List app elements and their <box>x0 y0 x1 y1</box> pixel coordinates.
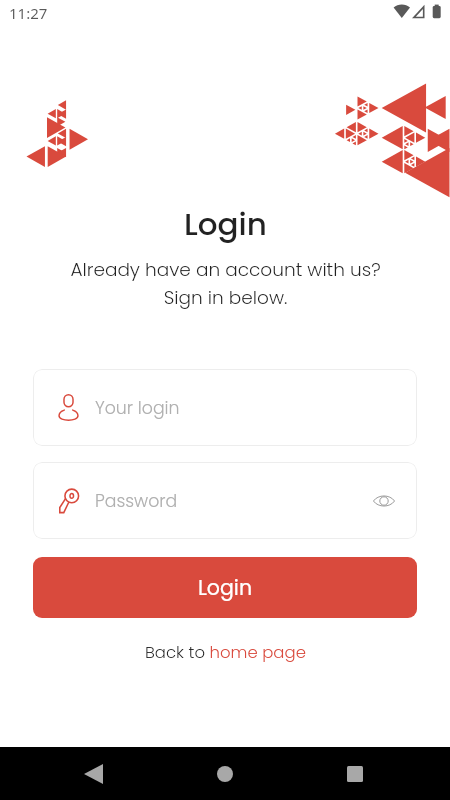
staticText: 11:27 <box>9 3 48 23</box>
button[interactable]: Back to home page <box>145 641 306 664</box>
button[interactable]: Password <box>33 462 417 539</box>
button[interactable]: Recent apps <box>334 753 376 795</box>
button[interactable]: Back <box>72 753 114 795</box>
staticText: Password <box>95 489 178 513</box>
button[interactable]: Login <box>33 557 417 618</box>
staticText: Already have an account with us? Sign in… <box>70 257 381 310</box>
button[interactable]: Your login <box>33 369 417 446</box>
staticText: Back to home page <box>145 641 306 664</box>
button[interactable]: Home <box>204 753 246 795</box>
staticText: Your login <box>95 396 180 420</box>
staticText: Login <box>198 573 252 602</box>
button[interactable]: Show password <box>369 486 399 516</box>
staticText: Login <box>184 202 267 245</box>
